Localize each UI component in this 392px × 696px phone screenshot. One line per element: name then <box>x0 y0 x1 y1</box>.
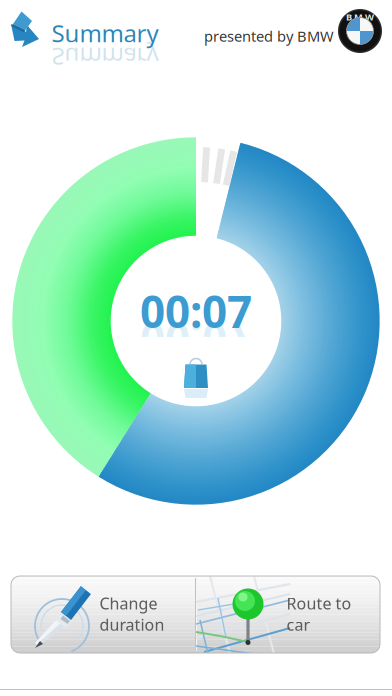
staticText: Summary <box>51 17 158 49</box>
staticText: 00:07 <box>140 311 252 369</box>
button[interactable] <box>195 576 380 653</box>
staticText: Change duration <box>99 593 164 635</box>
staticText: B M W <box>346 11 374 23</box>
staticText: 00:07 <box>140 282 252 340</box>
button[interactable]: Back <box>6 8 52 56</box>
button[interactable] <box>11 576 195 653</box>
staticText: Summary <box>51 41 158 73</box>
staticText: Route to car <box>286 593 351 635</box>
staticText: presented by BMW <box>204 26 334 46</box>
